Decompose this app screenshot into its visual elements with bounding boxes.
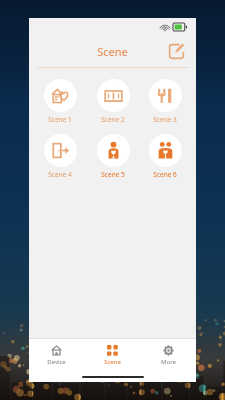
staticText: Scene 3	[153, 115, 177, 124]
staticText: More	[161, 358, 176, 366]
staticText: Scene	[104, 358, 121, 366]
button[interactable]: Scene 1	[34, 77, 86, 126]
staticText: Scene 2	[101, 115, 125, 124]
button[interactable]: Scene 5	[87, 132, 139, 181]
button[interactable]: Scene 4	[34, 132, 86, 181]
button[interactable]: Scene 2	[87, 77, 139, 126]
button[interactable]: Device	[29, 339, 84, 372]
button[interactable]: Edit scenes	[167, 42, 186, 61]
staticText: Scene	[97, 44, 128, 59]
staticText: Device	[47, 358, 66, 366]
button[interactable]: Scene 3	[139, 77, 191, 126]
button[interactable]: More	[140, 339, 196, 372]
staticText: Scene 6	[153, 170, 177, 179]
staticText: Scene 5	[101, 170, 125, 179]
button[interactable]: Scene	[84, 339, 140, 372]
staticText: Scene 4	[48, 170, 72, 179]
staticText: Scene 1	[48, 115, 72, 124]
button[interactable]: Scene 6	[139, 132, 191, 181]
